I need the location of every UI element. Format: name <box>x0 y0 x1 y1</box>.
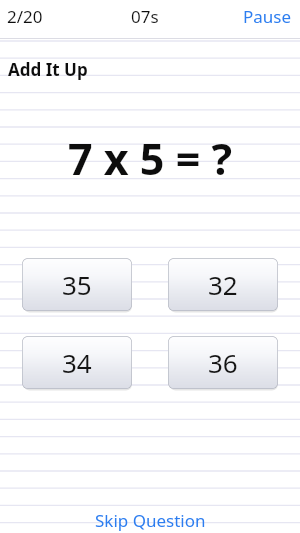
button[interactable]: Answer 35 <box>22 258 132 311</box>
staticText: Add It Up <box>8 58 88 81</box>
staticText: 7 x 5 = ? <box>68 129 232 188</box>
staticText: 35 <box>62 267 92 302</box>
staticText: 36 <box>208 345 238 380</box>
staticText: 34 <box>62 345 92 380</box>
staticText: 2/20 <box>7 5 43 28</box>
button[interactable]: Answer 34 <box>22 336 132 389</box>
staticText: Pause <box>243 5 292 28</box>
button[interactable]: Answer 32 <box>168 258 278 311</box>
staticText: Skip Question <box>95 509 206 532</box>
button[interactable]: Pause <box>235 0 300 33</box>
button[interactable]: Answer 36 <box>168 336 278 389</box>
staticText: 32 <box>208 267 238 302</box>
button[interactable]: Skip Question <box>75 506 226 533</box>
staticText: 07s <box>131 5 159 28</box>
